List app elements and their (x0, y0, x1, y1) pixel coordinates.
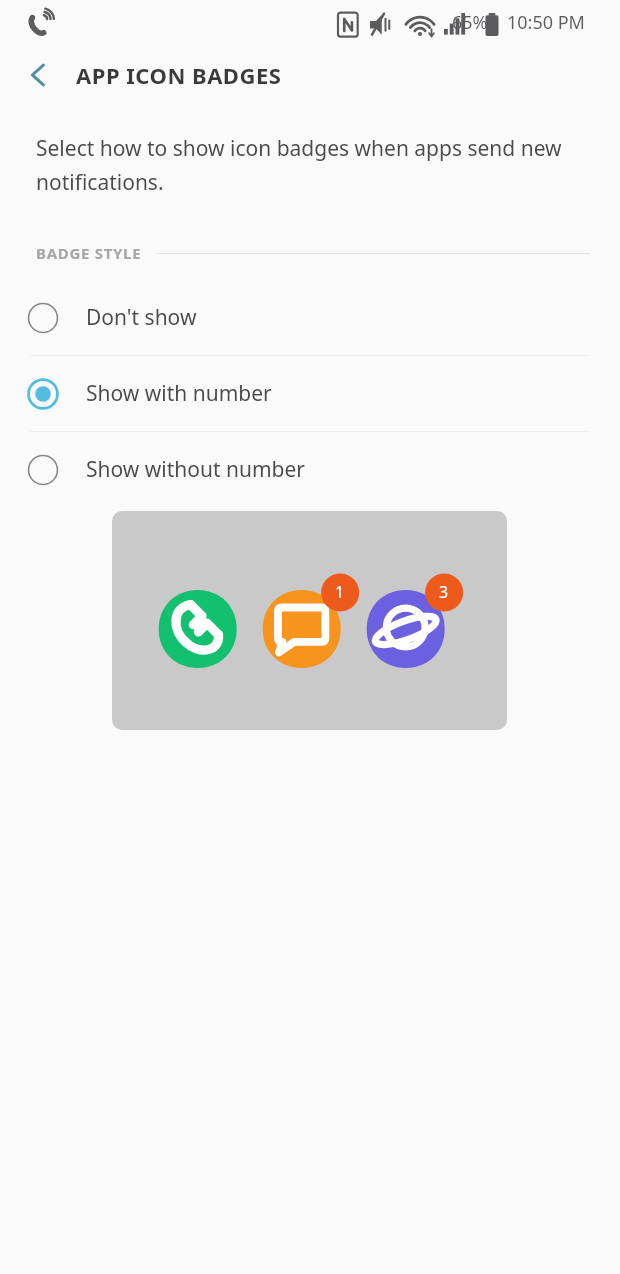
button[interactable]: Show without number (0, 432, 620, 507)
button[interactable]: Don't show (0, 280, 620, 355)
staticText: Don't show (86, 303, 197, 332)
staticText: APP ICON BADGES (76, 60, 282, 90)
staticText: 1 (335, 581, 345, 603)
staticText: BADGE STYLE (36, 243, 142, 263)
staticText: 3 (439, 581, 449, 603)
staticText: 65% (452, 10, 488, 35)
button[interactable]: Back (0, 44, 76, 106)
staticText: Show without number (86, 455, 305, 484)
button[interactable]: Show with number (0, 356, 620, 431)
staticText: 10:50 PM (507, 10, 585, 35)
staticText: Show with number (86, 379, 272, 408)
staticText: Select how to show icon badges when apps… (36, 134, 570, 196)
